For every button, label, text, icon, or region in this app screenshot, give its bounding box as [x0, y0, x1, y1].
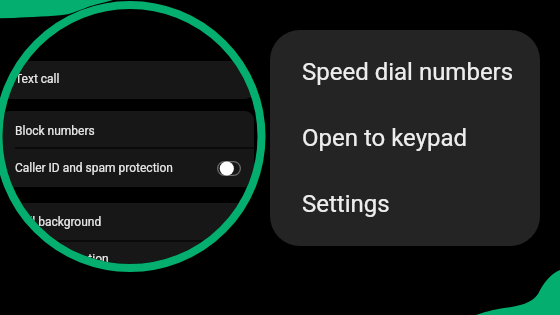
- staticText: Speed dial numbers: [302, 58, 514, 86]
- button[interactable]: Settings: [270, 171, 540, 237]
- button[interactable]: Caller notification: [0, 242, 254, 279]
- staticText: Call background: [15, 215, 102, 229]
- button[interactable]: Text call: [0, 61, 254, 99]
- button[interactable]: Block numbers: [0, 111, 254, 147]
- button[interactable]: Call background: [0, 203, 254, 240]
- button[interactable]: Caller ID and spam protection: [0, 149, 254, 188]
- staticText: Text call: [15, 72, 60, 86]
- staticText: Open to keypad: [302, 124, 468, 152]
- staticText: Settings: [302, 190, 390, 218]
- button[interactable]: Open to keypad: [270, 105, 540, 171]
- button[interactable]: Caller ID and spam protection switch: [217, 161, 241, 176]
- staticText: Caller ID and spam protection: [15, 161, 173, 175]
- button[interactable]: Speed dial numbers: [270, 39, 540, 105]
- staticText: Caller notification: [15, 252, 109, 266]
- staticText: Block numbers: [15, 124, 95, 138]
